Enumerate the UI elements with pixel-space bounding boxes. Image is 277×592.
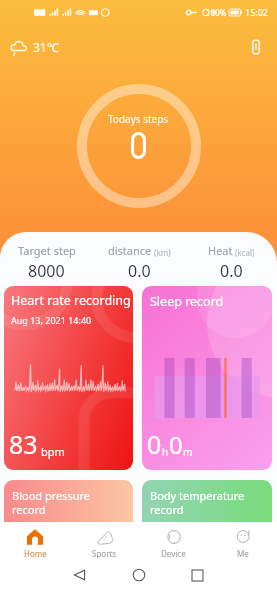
staticText: distance xyxy=(108,243,152,258)
staticText: Home xyxy=(24,548,47,558)
staticText: 15:02 xyxy=(245,6,269,18)
staticText: Todays steps xyxy=(108,112,169,126)
button[interactable]: Device xyxy=(246,37,266,57)
button[interactable]: Home xyxy=(0,522,70,558)
button[interactable]: Blood pressure record xyxy=(4,480,133,540)
staticText: Heat xyxy=(208,243,233,258)
button[interactable]: Back xyxy=(73,558,85,592)
button[interactable]: Target step xyxy=(0,243,93,282)
button[interactable]: Sleep record xyxy=(142,286,272,470)
staticText: Blood pressure record xyxy=(12,488,91,517)
button[interactable]: Body temperature record xyxy=(142,480,272,540)
button[interactable]: Me xyxy=(208,522,277,558)
button[interactable]: distance xyxy=(93,243,185,282)
staticText: m xyxy=(183,445,193,459)
staticText: Device xyxy=(161,548,186,558)
staticText: (km) xyxy=(154,247,171,258)
staticText: Sleep record xyxy=(150,293,224,310)
staticText: Body temperature record xyxy=(150,488,245,517)
staticText: 83 xyxy=(9,427,38,461)
button[interactable]: Home xyxy=(132,558,145,592)
staticText: 8000 xyxy=(28,260,65,282)
button[interactable]: Sports xyxy=(70,522,139,558)
staticText: 0.0 xyxy=(220,260,243,282)
staticText: (kcal) xyxy=(235,247,255,258)
staticText: h xyxy=(162,445,169,459)
staticText: Me xyxy=(237,548,249,558)
button[interactable]: Recents xyxy=(191,558,203,592)
button[interactable]: Device xyxy=(139,522,208,558)
staticText: 31℃ xyxy=(33,39,59,55)
button[interactable]: Heat xyxy=(185,243,277,282)
staticText: 0.0 xyxy=(128,260,151,282)
button[interactable]: Heart rate recording xyxy=(4,286,133,470)
staticText: 0 xyxy=(147,427,162,461)
staticText: Sports xyxy=(92,548,117,558)
staticText: Aug 13, 2021 14:40 xyxy=(11,314,92,326)
staticText: Heart rate recording xyxy=(11,292,131,309)
staticText: bpm xyxy=(41,444,65,459)
staticText: 100% xyxy=(206,7,227,18)
staticText: Target step xyxy=(18,243,76,258)
staticText: 0 xyxy=(169,428,183,461)
